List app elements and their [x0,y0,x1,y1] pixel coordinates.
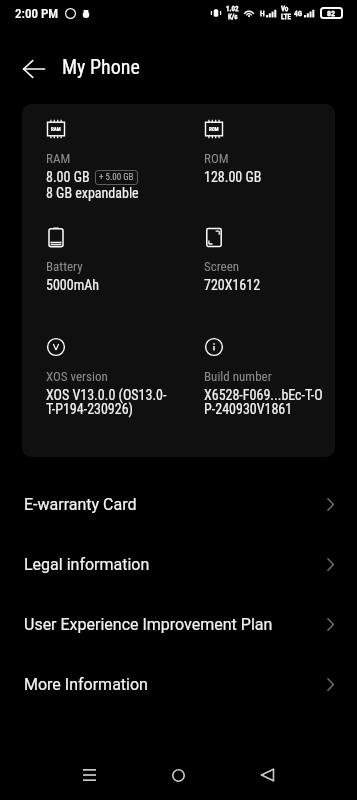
staticText: LTE [281,13,291,21]
staticText: Build number [204,369,272,384]
staticText: 8 GB expandable [46,185,139,201]
other: RAM [46,119,66,139]
other: Information [204,337,224,357]
staticText: X6528-F069...bEc-T-O P-240930V1861 [204,387,323,418]
staticText: 720X1612 [204,277,261,293]
staticText: User Experience Improvement Plan [24,615,273,634]
button[interactable]: User Experience Improvement Plan [0,594,357,654]
staticText: XOS version [46,369,108,384]
staticText: Vo [281,5,289,13]
staticText: E-warranty Card [24,495,137,514]
staticText: More Information [24,675,148,694]
staticText: XOS V13.0.0 (OS13.0- T-P194-230926) [46,387,167,418]
staticText: 2:00 PM [15,6,59,21]
staticText: ROM [204,151,229,166]
other: Version [46,337,66,357]
button[interactable]: Legal information [0,534,357,594]
staticText: 4G [294,9,303,18]
staticText: K/s [228,13,238,21]
button[interactable]: E-warranty Card [0,474,357,534]
staticText: 128.00 GB [204,169,262,185]
staticText: RAM [46,151,71,166]
staticText: 1.02 [226,5,239,13]
other: ROM [204,119,224,139]
staticText: 82 [327,9,336,18]
staticText: H [260,9,265,18]
staticText: Battery [46,259,83,274]
button[interactable]: More Information [0,654,357,714]
staticText: Legal information [24,555,150,574]
button[interactable]: Recent apps [69,755,109,795]
staticText: + 5.00 GB [99,172,134,183]
other: Screen [204,227,224,247]
staticText: ROM [209,126,219,132]
staticText: Screen [204,259,240,274]
staticText: My Phone [62,55,140,78]
other: Battery [46,227,66,247]
staticText: 5000mAh [46,277,100,293]
staticText: RAM [51,126,61,132]
button[interactable]: Back [247,755,287,795]
staticText: 8.00 GB [46,169,90,185]
button[interactable]: Back [17,52,51,86]
button[interactable]: Home [158,755,198,795]
